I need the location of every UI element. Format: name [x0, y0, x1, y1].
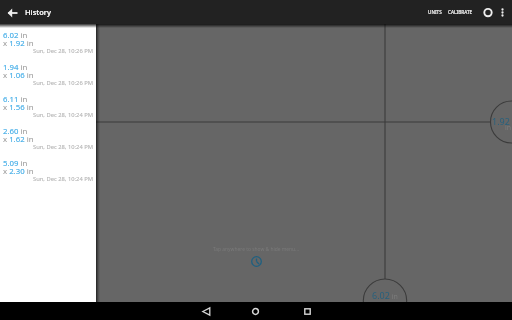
staticText: Sun, Dec 28, 10:24 PM — [0, 111, 93, 119]
staticText: x 2.30 in — [3, 166, 34, 177]
staticText: x 1.06 in — [3, 70, 34, 81]
staticText: x 1.62 in — [3, 134, 34, 145]
staticText: 5.09 in — [3, 158, 28, 169]
button[interactable]: 1.94 in — [0, 56, 96, 88]
staticText: 6.02 in — [3, 30, 28, 41]
button[interactable]: UNITS — [425, 0, 445, 24]
staticText: 2.60 in — [3, 126, 28, 137]
staticText: 1.92 — [492, 115, 510, 127]
staticText: in — [505, 123, 512, 133]
staticText: UNITS — [428, 9, 442, 15]
staticText: Sun, Dec 28, 10:26 PM — [0, 47, 93, 55]
staticText: Sun, Dec 28, 10:24 PM — [0, 175, 93, 183]
staticText: CALIBRATE — [448, 9, 473, 15]
button[interactable]: CALIBRATE — [445, 0, 476, 24]
button[interactable]: More options — [495, 0, 509, 24]
staticText: 6.11 in — [3, 94, 28, 105]
staticText: Tap anywhere to show & hide menu... — [213, 246, 300, 253]
button[interactable]: 2.60 in — [0, 120, 96, 152]
button[interactable]: Measure mode — [479, 0, 495, 24]
button[interactable]: 5.09 in — [0, 152, 96, 184]
staticText: Sun, Dec 28, 10:24 PM — [0, 143, 93, 151]
staticText: 1.94 in — [3, 62, 28, 73]
staticText: x 1.56 in — [3, 102, 34, 113]
button[interactable]: Back — [197, 302, 215, 320]
staticText: x 1.92 in — [3, 38, 34, 49]
button[interactable]: 6.11 in — [0, 88, 96, 120]
button[interactable]: 6.02 in — [0, 24, 96, 56]
button[interactable]: 1.92 — [0, 0, 512, 302]
staticText: 6.02 in — [372, 289, 398, 301]
button[interactable]: Navigate up — [0, 0, 24, 24]
staticText: History — [25, 7, 51, 17]
button[interactable]: Home — [246, 302, 264, 320]
staticText: Sun, Dec 28, 10:26 PM — [0, 79, 93, 87]
button[interactable]: Recent apps — [298, 302, 316, 320]
